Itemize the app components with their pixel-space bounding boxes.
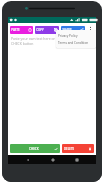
button[interactable]: SHARE: [61, 26, 85, 34]
button[interactable]: Back: [23, 155, 32, 164]
staticText: Terms and Condition: [58, 41, 89, 45]
staticText: CHECK button: [11, 41, 34, 46]
button[interactable]: More options: [87, 25, 94, 34]
button[interactable]: CHECK: [10, 144, 60, 153]
button[interactable]: Terms and Condition: [56, 39, 96, 46]
staticText: SHARE: [62, 28, 72, 32]
staticText: COPY: [36, 28, 44, 32]
staticText: Privacy Policy: [58, 34, 78, 38]
button[interactable]: PASTE: [10, 26, 33, 34]
button[interactable]: Home: [48, 155, 57, 164]
button[interactable]: Privacy Policy: [56, 32, 96, 39]
button[interactable]: COPY: [35, 26, 59, 34]
staticText: PASTE: [11, 28, 20, 32]
staticText: CHECK: [29, 147, 39, 151]
staticText: Paste your own text here or: [11, 36, 55, 41]
button[interactable]: Recent apps: [72, 155, 81, 164]
staticText: DELETE: [64, 147, 75, 151]
button[interactable]: DELETE: [62, 144, 94, 153]
